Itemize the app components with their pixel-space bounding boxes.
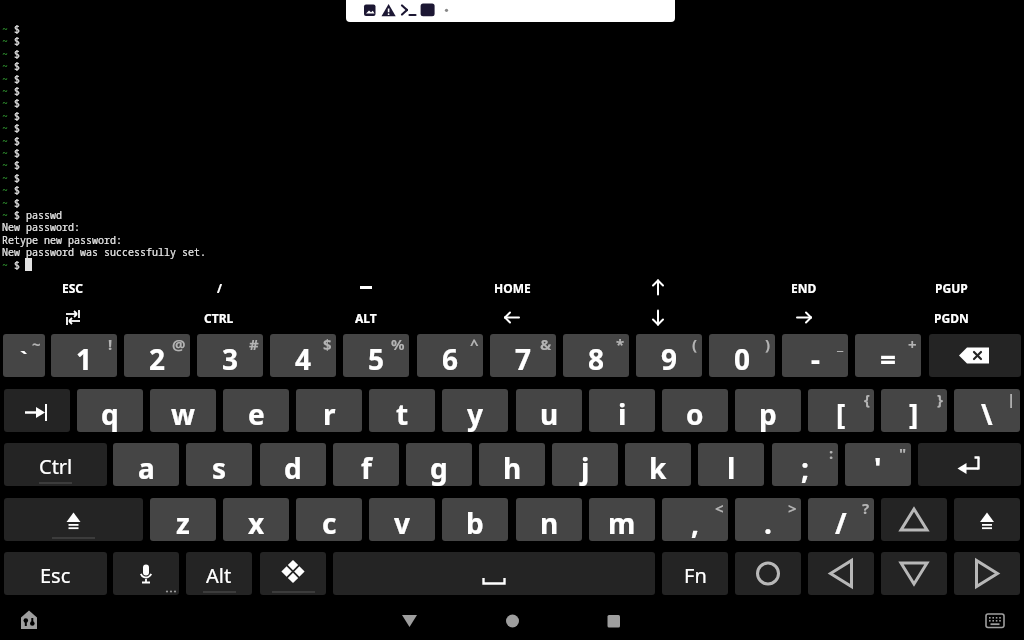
staticText: END	[791, 280, 817, 296]
staticText: f	[361, 449, 372, 486]
button[interactable]: Alt	[186, 552, 252, 595]
button[interactable]: a	[113, 443, 179, 486]
button[interactable]	[4, 389, 70, 432]
button[interactable]: 4	[270, 334, 336, 377]
button[interactable]: [	[808, 389, 874, 432]
button[interactable]: s	[186, 443, 252, 486]
button[interactable]: d	[260, 443, 326, 486]
button[interactable]: 5	[343, 334, 409, 377]
button[interactable]: h	[479, 443, 545, 486]
button[interactable]	[929, 334, 1021, 377]
button[interactable]: y	[442, 389, 508, 432]
staticText: Alt	[206, 562, 232, 589]
button[interactable]: PGDN	[878, 307, 1024, 328]
button[interactable]: CTRL	[146, 307, 292, 328]
button[interactable]: g	[406, 443, 472, 486]
button[interactable]: w	[150, 389, 216, 432]
button[interactable]: n	[516, 498, 582, 541]
staticText: 3	[222, 340, 239, 377]
button[interactable]: 9	[636, 334, 702, 377]
button[interactable]	[394, 604, 426, 636]
button[interactable]: /	[146, 277, 292, 298]
button[interactable]: PGUP	[878, 277, 1024, 298]
button[interactable]: 3	[197, 334, 263, 377]
button[interactable]: q	[77, 389, 143, 432]
button[interactable]: ]	[881, 389, 947, 432]
button[interactable]: l	[698, 443, 764, 486]
button[interactable]: ALT	[293, 307, 439, 328]
button[interactable]	[293, 277, 439, 298]
button[interactable]	[808, 552, 874, 595]
button[interactable]: -	[782, 334, 848, 377]
button[interactable]	[439, 307, 585, 328]
button[interactable]: p	[735, 389, 801, 432]
button[interactable]	[954, 498, 1020, 541]
button[interactable]: r	[296, 389, 362, 432]
staticText: ~ $	[2, 134, 20, 148]
button[interactable]	[496, 604, 528, 636]
button[interactable]: 2	[124, 334, 190, 377]
button[interactable]: 6	[417, 334, 483, 377]
button[interactable]: Ctrl	[4, 443, 107, 486]
button[interactable]: j	[552, 443, 618, 486]
staticText: j	[581, 449, 590, 486]
button[interactable]: ESC	[0, 277, 146, 298]
button[interactable]: END	[731, 277, 877, 298]
button[interactable]: z	[150, 498, 216, 541]
button[interactable]: /	[808, 498, 874, 541]
button[interactable]	[918, 443, 1021, 486]
button[interactable]: t	[369, 389, 435, 432]
staticText: h	[503, 449, 522, 486]
button[interactable]: e	[223, 389, 289, 432]
button[interactable]: u	[516, 389, 582, 432]
button[interactable]: 7	[490, 334, 556, 377]
button[interactable]: i	[589, 389, 655, 432]
button[interactable]	[260, 552, 326, 595]
button[interactable]	[4, 498, 143, 541]
button[interactable]: \	[954, 389, 1020, 432]
staticText: PGDN	[934, 310, 969, 326]
staticText: ?	[862, 498, 870, 518]
staticText: /	[835, 504, 847, 541]
button[interactable]: c	[296, 498, 362, 541]
button[interactable]	[954, 552, 1020, 595]
button[interactable]: v	[369, 498, 435, 541]
button[interactable]	[333, 552, 655, 595]
button[interactable]: ,	[662, 498, 728, 541]
button[interactable]: 8	[563, 334, 629, 377]
staticText: o	[686, 395, 704, 432]
button[interactable]: '	[845, 443, 911, 486]
button[interactable]: HOME	[439, 277, 585, 298]
button[interactable]	[735, 552, 801, 595]
button[interactable]: 1	[51, 334, 117, 377]
button[interactable]	[13, 604, 45, 636]
button[interactable]	[881, 498, 947, 541]
button[interactable]: k	[625, 443, 691, 486]
button[interactable]: Fn	[662, 552, 728, 595]
button[interactable]: 0	[709, 334, 775, 377]
button[interactable]: =	[855, 334, 921, 377]
button[interactable]	[0, 307, 146, 328]
staticText: |	[1007, 389, 1016, 409]
button[interactable]: f	[333, 443, 399, 486]
button[interactable]	[113, 552, 179, 595]
button[interactable]: `	[3, 334, 45, 377]
button[interactable]	[979, 604, 1011, 636]
button[interactable]: x	[223, 498, 289, 541]
button[interactable]: b	[442, 498, 508, 541]
button[interactable]	[598, 604, 630, 636]
button[interactable]: .	[735, 498, 801, 541]
button[interactable]: m	[589, 498, 655, 541]
button[interactable]: ;	[772, 443, 838, 486]
staticText: w	[171, 395, 195, 432]
staticText: {	[864, 389, 870, 409]
button[interactable]	[585, 277, 731, 298]
staticText: ~ $	[2, 47, 20, 61]
button[interactable]	[585, 307, 731, 328]
staticText: z	[176, 504, 190, 541]
button[interactable]	[881, 552, 947, 595]
button[interactable]	[731, 307, 877, 328]
button[interactable]: o	[662, 389, 728, 432]
button[interactable]: Esc	[4, 552, 107, 595]
staticText: ;	[801, 449, 809, 486]
